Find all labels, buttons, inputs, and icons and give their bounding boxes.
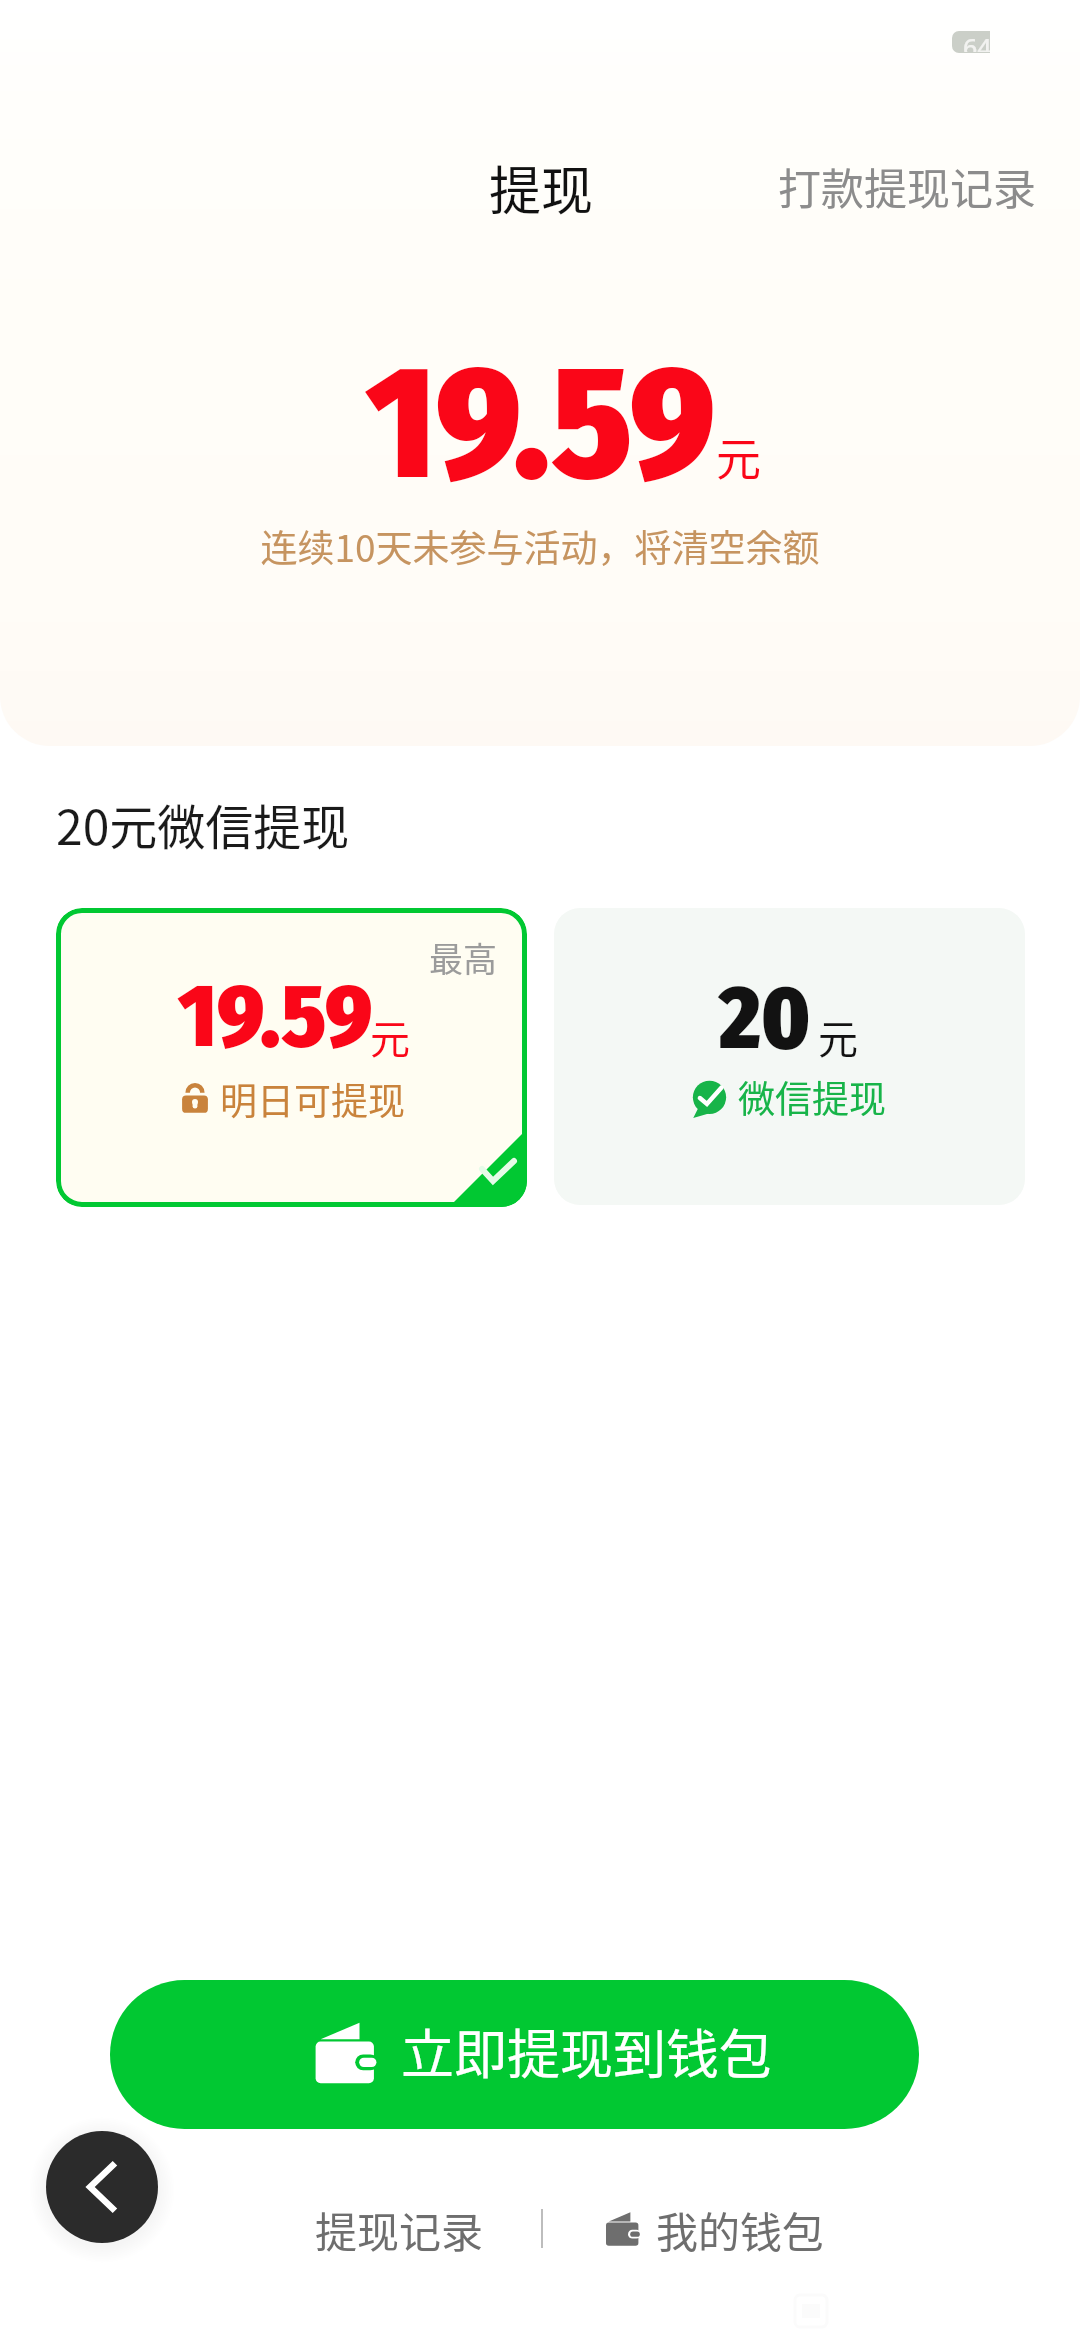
button[interactable]: 立即提现到钱包 — [110, 1980, 919, 2129]
staticText: 20 — [719, 966, 811, 1072]
staticText: 元 — [818, 1008, 858, 1066]
staticText: 微信提现 — [738, 1070, 886, 1124]
button[interactable]: 最高 — [56, 908, 527, 1207]
staticText: 提现 — [489, 150, 594, 225]
button[interactable]: 打款提现记录 — [762, 145, 1052, 227]
button[interactable]: 提现记录 — [300, 2186, 498, 2272]
staticText: 64 — [963, 31, 990, 52]
button[interactable]: Back — [46, 2131, 158, 2243]
staticText: 19.59 — [178, 964, 373, 1070]
staticText: 立即提现到钱包 — [401, 2013, 772, 2090]
staticText: 最高 — [429, 933, 497, 982]
button[interactable]: 提现 — [473, 140, 610, 235]
staticText: 20元微信提现 — [56, 789, 350, 859]
staticText: 我的钱包 — [656, 2199, 825, 2260]
staticText: 元 — [370, 1008, 410, 1066]
button[interactable]: 我的钱包 — [584, 2186, 845, 2272]
staticText: 打款提现记录 — [778, 155, 1036, 217]
staticText: 元 — [716, 424, 762, 489]
button[interactable]: 20 — [554, 908, 1025, 1205]
staticText: 明日可提现 — [220, 1072, 405, 1126]
staticText: 19.59 — [366, 329, 716, 519]
staticText: 提现记录 — [315, 2199, 484, 2260]
staticText: 连续10天未参与活动，将清空余额 — [260, 519, 820, 573]
